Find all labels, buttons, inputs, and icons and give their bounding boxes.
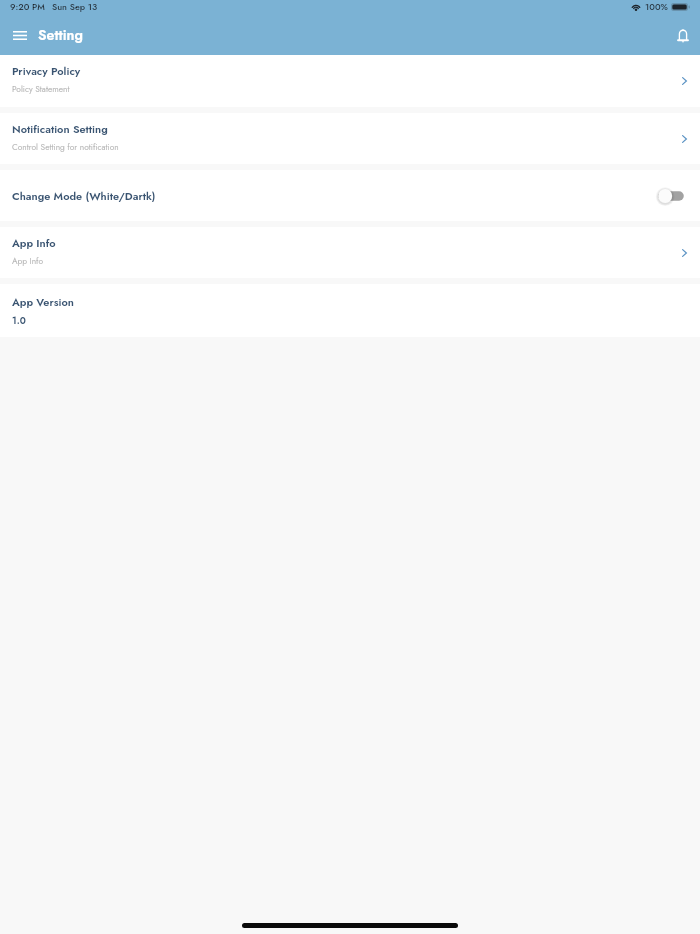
staticText: Setting <box>38 25 84 46</box>
staticText: 1.0 <box>12 314 26 328</box>
button[interactable]: Notification Setting <box>0 113 700 164</box>
button[interactable]: Change mode toggle <box>658 187 687 205</box>
staticText: Change Mode (White/Dartk) <box>12 188 658 204</box>
button[interactable]: Open navigation menu <box>0 19 38 55</box>
staticText: 9:20 PM <box>10 0 45 13</box>
button[interactable]: App Info <box>0 227 700 278</box>
staticText: 100% <box>645 0 668 13</box>
staticText: Sun Sep 13 <box>52 0 98 13</box>
staticText: Notification Setting <box>12 121 108 137</box>
button[interactable]: Notifications <box>666 19 700 55</box>
staticText: App Info <box>12 255 44 267</box>
staticText: App Info <box>12 235 56 251</box>
staticText: Control Setting for notification <box>12 141 119 153</box>
staticText: Policy Statement <box>12 83 70 95</box>
button[interactable]: Privacy Policy <box>0 55 700 107</box>
staticText: Privacy Policy <box>12 63 81 79</box>
button[interactable]: Change Mode (White/Dartk) <box>0 170 700 221</box>
staticText: App Version <box>12 294 74 310</box>
button[interactable]: App Version <box>0 284 700 337</box>
